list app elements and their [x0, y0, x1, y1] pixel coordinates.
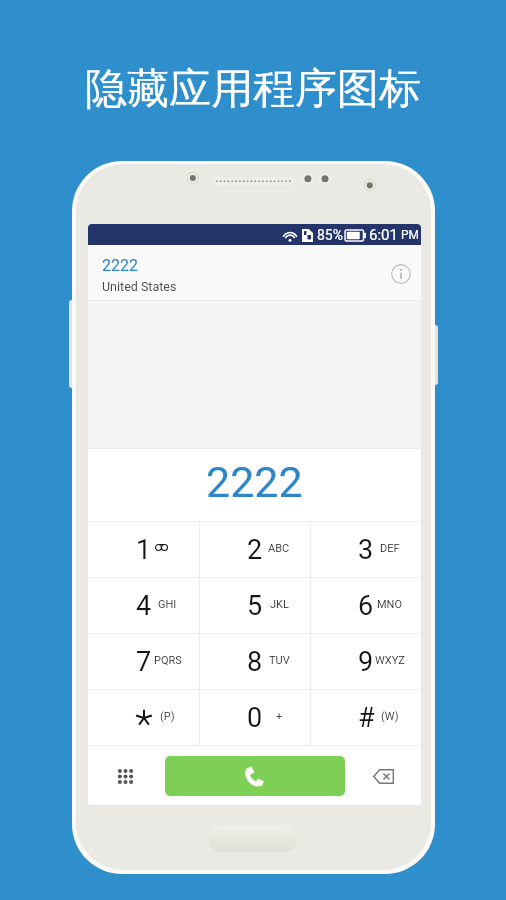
staticText: 2 — [247, 534, 263, 566]
staticText: 9 — [358, 646, 374, 678]
button[interactable]: Home — [208, 825, 298, 852]
button[interactable]: Call — [165, 756, 345, 796]
button[interactable]: 3 — [311, 522, 421, 577]
staticText: PQRS — [154, 654, 182, 667]
button[interactable]: 9 — [311, 634, 421, 689]
staticText: TUV — [269, 654, 290, 667]
button[interactable]: 4 — [88, 578, 199, 633]
staticText: (W) — [381, 710, 399, 723]
staticText: 1 — [136, 534, 152, 566]
button[interactable]: 7 — [88, 634, 199, 689]
staticText: ABC — [268, 542, 290, 555]
staticText: 5 — [247, 590, 263, 622]
staticText: GHI — [158, 598, 177, 611]
staticText: United States — [102, 279, 177, 294]
staticText: 3 — [358, 534, 374, 566]
staticText: 0 — [247, 702, 263, 734]
button[interactable]: 6 — [311, 578, 421, 633]
button[interactable]: Backspace — [367, 760, 399, 792]
staticText: PM — [401, 228, 420, 242]
staticText: DEF — [380, 542, 400, 555]
staticText: 隐藏应用程序图标 — [85, 63, 421, 116]
staticText: + — [276, 710, 283, 723]
button[interactable]: 5 — [200, 578, 310, 633]
button[interactable]: Keypad — [109, 760, 141, 792]
button[interactable]: 2 — [200, 522, 310, 577]
staticText: 8 — [247, 646, 263, 678]
button[interactable]: 1 — [88, 522, 199, 577]
staticText: 4 — [136, 590, 152, 622]
staticText: 6 — [358, 590, 374, 622]
staticText: MNO — [377, 598, 403, 611]
staticText: 2222 — [102, 256, 138, 275]
button[interactable]: 0 — [200, 690, 310, 745]
button[interactable]: (P) — [88, 690, 199, 745]
staticText: JKL — [270, 598, 289, 611]
staticText: (P) — [160, 710, 175, 723]
staticText: WXYZ — [375, 654, 405, 667]
button[interactable]: 8 — [200, 634, 310, 689]
staticText: 6:01 — [369, 226, 398, 244]
staticText: 85% — [317, 227, 343, 243]
staticText: 7 — [136, 646, 152, 678]
button[interactable]: # — [311, 690, 421, 745]
staticText: 2222 — [206, 457, 303, 507]
button[interactable]: Call details — [385, 258, 417, 290]
staticText: # — [358, 702, 375, 734]
